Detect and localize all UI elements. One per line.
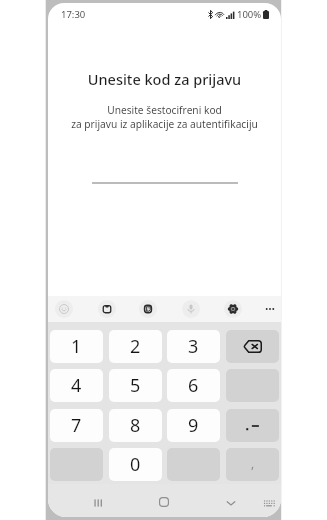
staticText: Unesite šestocifreni kod za prijavu iz a… [48,103,281,131]
button[interactable]: 1 [50,330,103,363]
button[interactable]: Switch keyboard [255,490,281,517]
button[interactable]: 8 [109,409,162,442]
staticText: 2 [130,334,141,359]
button[interactable]: 6 [167,369,220,402]
staticText: 1 [71,334,82,359]
staticText: 4 [71,373,82,398]
staticText: 17:30 [61,8,86,21]
staticText: 9 [188,413,199,438]
button[interactable]: Home [150,488,178,516]
staticText: Unesite kod za prijavu [48,69,281,89]
button[interactable]: Clipboard [94,296,120,322]
button[interactable]: Comma [226,448,279,481]
button[interactable]: More options [257,296,281,322]
button[interactable]: 2 [109,330,162,363]
button[interactable]: Hide keyboard [217,489,245,517]
button[interactable]: 3 [167,330,220,363]
staticText: , [251,455,255,471]
button[interactable]: 5 [109,369,162,402]
staticText: 7 [71,413,82,438]
button[interactable]: Recents [84,489,112,517]
staticText: 0 [130,452,141,477]
button[interactable]: Voice input [178,296,204,322]
button[interactable]: 0 [109,448,162,481]
staticText: 6 [188,373,199,398]
button[interactable]: Keyboard settings [220,296,246,322]
button[interactable]: Emoji [51,296,77,322]
button[interactable]: 4 [50,369,103,402]
staticText: 3 [188,334,199,359]
staticText: 8 [130,413,141,438]
button[interactable]: 9 [167,409,220,442]
staticText: 5 [130,373,141,398]
button[interactable]: Dot dash [226,409,279,442]
button[interactable]: Backspace [226,330,279,363]
staticText: 100% [237,8,262,21]
button[interactable]: Stickers [135,296,161,322]
button[interactable]: 7 [50,409,103,442]
